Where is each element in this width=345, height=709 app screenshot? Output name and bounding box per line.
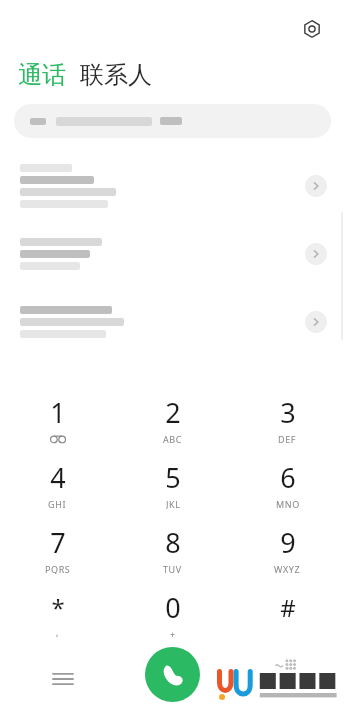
button[interactable]: 联系人 bbox=[80, 58, 152, 92]
button[interactable]: Details bbox=[305, 311, 327, 333]
button[interactable]: * bbox=[0, 581, 115, 646]
staticText: * bbox=[51, 591, 65, 624]
button[interactable]: Settings bbox=[295, 12, 329, 46]
button[interactable]: 7 bbox=[0, 516, 115, 581]
staticText: 6 bbox=[280, 459, 296, 496]
staticText: 联系人 bbox=[80, 60, 152, 90]
staticText: + bbox=[170, 628, 176, 639]
staticText: WXYZ bbox=[274, 563, 301, 574]
staticText: 通话 bbox=[18, 60, 66, 90]
button[interactable]: 5 bbox=[115, 451, 230, 516]
staticText: ABC bbox=[163, 433, 183, 444]
staticText: MNO bbox=[276, 498, 300, 509]
staticText: 3 bbox=[280, 394, 296, 431]
staticText: 9 bbox=[280, 524, 296, 561]
button[interactable]: 2 bbox=[115, 386, 230, 451]
staticText: GHI bbox=[48, 498, 67, 509]
staticText: PQRS bbox=[45, 563, 71, 574]
staticText: 2 bbox=[165, 394, 181, 431]
staticText: 5 bbox=[165, 459, 181, 496]
button[interactable]: Hide keypad bbox=[269, 648, 307, 686]
button[interactable]: 0 bbox=[115, 581, 230, 646]
button[interactable]: Details bbox=[305, 175, 327, 197]
staticText: 4 bbox=[50, 459, 66, 496]
button[interactable]: 6 bbox=[230, 451, 345, 516]
button[interactable]: 4 bbox=[0, 451, 115, 516]
staticText: TUV bbox=[163, 563, 182, 574]
button[interactable]: 8 bbox=[115, 516, 230, 581]
button[interactable]: Details bbox=[305, 243, 327, 265]
button[interactable] bbox=[14, 104, 331, 138]
staticText: # bbox=[280, 591, 296, 624]
staticText: 7 bbox=[50, 524, 66, 561]
button[interactable]: Details bbox=[0, 288, 345, 356]
staticText: , bbox=[56, 626, 60, 637]
staticText: 1 bbox=[50, 394, 66, 431]
staticText: DEF bbox=[278, 433, 297, 444]
button[interactable]: 通话 bbox=[18, 58, 66, 92]
button[interactable]: Call bbox=[145, 647, 200, 702]
button[interactable]: # bbox=[230, 581, 345, 646]
button[interactable]: 1 bbox=[0, 386, 115, 451]
button[interactable]: Menu bbox=[44, 660, 82, 698]
button[interactable]: Details bbox=[0, 220, 345, 288]
button[interactable]: Details bbox=[0, 152, 345, 220]
staticText: 8 bbox=[165, 524, 181, 561]
button[interactable]: 3 bbox=[230, 386, 345, 451]
staticText: 0 bbox=[165, 589, 181, 626]
button[interactable]: 9 bbox=[230, 516, 345, 581]
staticText: JKL bbox=[166, 498, 181, 509]
